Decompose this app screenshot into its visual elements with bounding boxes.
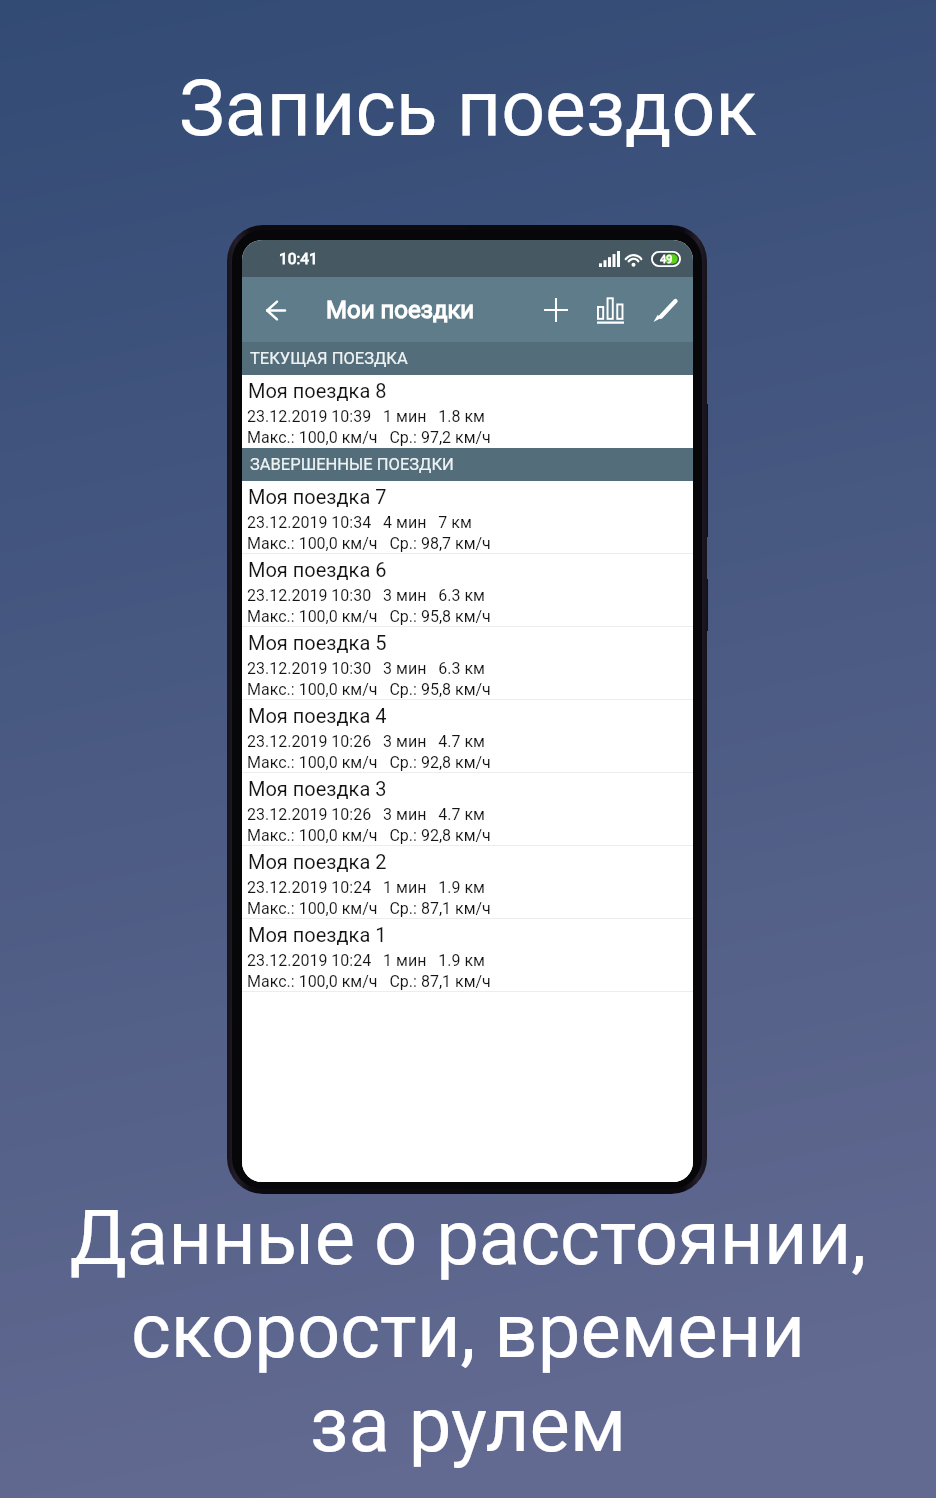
staticText: Данные о расстоянии, скорости, времени з… [0,1193,936,1470]
button[interactable]: Add trip [528,280,583,340]
staticText: Моя поездка 3 [248,777,387,800]
staticText: Моя поездка 4 [248,704,387,727]
button[interactable]: Моя поездка 1 [242,919,693,992]
button[interactable]: Моя поездка 8 [242,375,693,448]
staticText: Макс.: 100,0 км/ч Ср.: 95,8 км/ч [247,607,491,626]
staticText: Макс.: 100,0 км/ч Ср.: 95,8 км/ч [247,680,491,699]
button[interactable]: Моя поездка 6 [242,554,693,627]
staticText: Макс.: 100,0 км/ч Ср.: 87,1 км/ч [247,899,491,918]
staticText: 23.12.2019 10:26 3 мин 4.7 км [247,732,485,751]
staticText: Мои поездки [326,296,475,324]
staticText: 23.12.2019 10:24 1 мин 1.9 км [247,878,485,897]
button[interactable]: Моя поездка 2 [242,846,693,919]
button[interactable]: Statistics [583,280,638,340]
button[interactable]: Back [254,288,298,332]
staticText: Макс.: 100,0 км/ч Ср.: 92,8 км/ч [247,826,491,845]
staticText: Моя поездка 1 [248,923,387,946]
staticText: Макс.: 100,0 км/ч Ср.: 97,2 км/ч [247,428,491,447]
staticText: Макс.: 100,0 км/ч Ср.: 87,1 км/ч [247,972,491,991]
staticText: 23.12.2019 10:30 3 мин 6.3 км [247,659,485,678]
button[interactable]: Моя поездка 3 [242,773,693,846]
staticText: Макс.: 100,0 км/ч Ср.: 92,8 км/ч [247,753,491,772]
staticText: 23.12.2019 10:30 3 мин 6.3 км [247,586,485,605]
staticText: 23.12.2019 10:39 1 мин 1.8 км [247,407,485,426]
staticText: Макс.: 100,0 км/ч Ср.: 98,7 км/ч [247,534,491,553]
staticText: Моя поездка 2 [248,850,387,873]
staticText: Моя поездка 5 [248,631,387,654]
button[interactable]: Edit [638,280,693,340]
staticText: Моя поездка 6 [248,558,387,581]
staticText: 23.12.2019 10:24 1 мин 1.9 км [247,951,485,970]
button[interactable]: Моя поездка 7 [242,481,693,554]
button[interactable]: Моя поездка 5 [242,627,693,700]
staticText: ЗАВЕРШЕННЫЕ ПОЕЗДКИ [250,455,454,474]
button[interactable]: Моя поездка 4 [242,700,693,773]
staticText: 23.12.2019 10:26 3 мин 4.7 км [247,805,485,824]
staticText: 23.12.2019 10:34 4 мин 7 км [247,513,472,532]
staticText: 49 [660,253,673,266]
staticText: Моя поездка 7 [248,485,387,508]
staticText: ТЕКУЩАЯ ПОЕЗДКА [250,349,408,368]
staticText: Запись поездок [0,64,936,154]
staticText: Моя поездка 8 [248,379,387,402]
staticText: 10:41 [279,250,318,268]
